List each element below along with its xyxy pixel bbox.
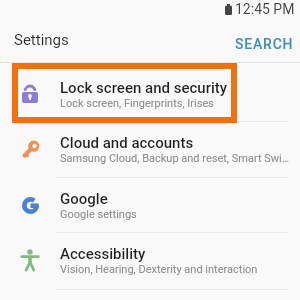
staticText: Samsung Cloud, Backup and reset, Smart S… — [60, 152, 290, 165]
staticText: Settings — [14, 31, 69, 49]
staticText: Lock screen and security — [60, 79, 228, 97]
staticText: SEARCH — [235, 36, 294, 52]
staticText: Vision, Hearing, Dexterity and interacti… — [60, 263, 258, 276]
button[interactable]: Google — [0, 178, 300, 232]
button[interactable]: Cloud and accounts — [0, 122, 300, 177]
staticText: 12:45 PM — [235, 1, 295, 17]
staticText: Accessibility — [60, 245, 146, 263]
staticText: Lock screen, Fingerprints, Irises — [60, 97, 214, 110]
staticText: Google settings — [60, 208, 137, 221]
button[interactable]: Accessibility — [0, 233, 300, 289]
button[interactable]: SEARCH — [235, 36, 294, 52]
staticText: Google — [60, 190, 108, 208]
button[interactable]: Lock screen and security — [0, 63, 300, 121]
staticText: Cloud and accounts — [60, 134, 194, 152]
